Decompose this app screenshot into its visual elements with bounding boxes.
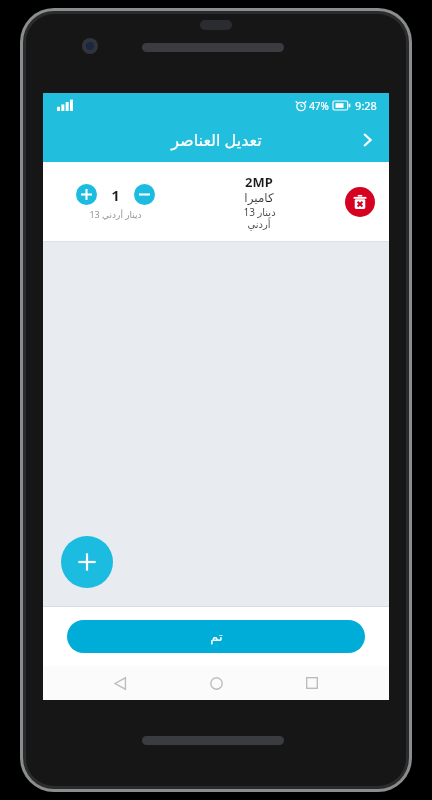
button[interactable]: Decrease quantity: [134, 184, 155, 205]
staticText: 2MP: [245, 173, 273, 191]
button[interactable]: Forward: [345, 118, 389, 162]
staticText: 1: [111, 185, 120, 205]
staticText: أردني: [247, 219, 271, 231]
staticText: 47%: [309, 99, 329, 113]
staticText: كاميرا: [244, 191, 274, 205]
button[interactable]: Back: [101, 666, 139, 700]
button[interactable]: Increase quantity: [76, 184, 97, 205]
button[interactable]: Increase quantity: [43, 162, 389, 242]
staticText: 13 دينار: [243, 205, 276, 219]
button[interactable]: تم: [67, 620, 365, 653]
button[interactable]: Add item: [61, 536, 113, 588]
staticText: 13 دينار أردني: [89, 208, 142, 220]
button[interactable]: Home: [197, 666, 235, 700]
staticText: 9:28: [355, 98, 377, 113]
button[interactable]: Delete item: [345, 187, 375, 217]
staticText: تم: [210, 629, 223, 644]
staticText: تعديل العناصر: [171, 129, 262, 151]
button[interactable]: Recent apps: [293, 666, 331, 700]
